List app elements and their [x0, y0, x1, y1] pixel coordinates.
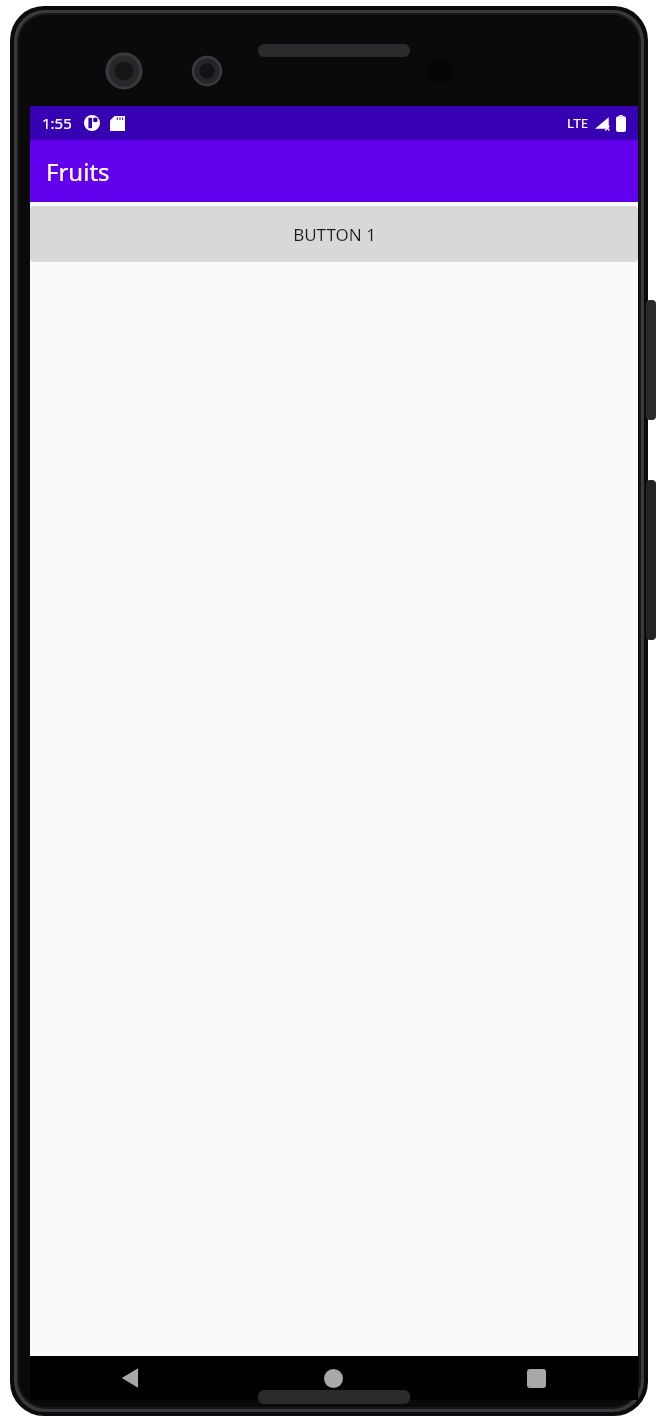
staticText: LTE: [567, 114, 589, 132]
staticText: BUTTON 1: [293, 223, 376, 246]
staticText: 1:55: [42, 113, 72, 133]
button[interactable]: Back: [30, 1356, 232, 1400]
button[interactable]: Recent apps: [435, 1356, 638, 1400]
button[interactable]: BUTTON 1: [30, 206, 638, 262]
button[interactable]: Home: [232, 1356, 435, 1400]
staticText: Fruits: [46, 155, 110, 188]
